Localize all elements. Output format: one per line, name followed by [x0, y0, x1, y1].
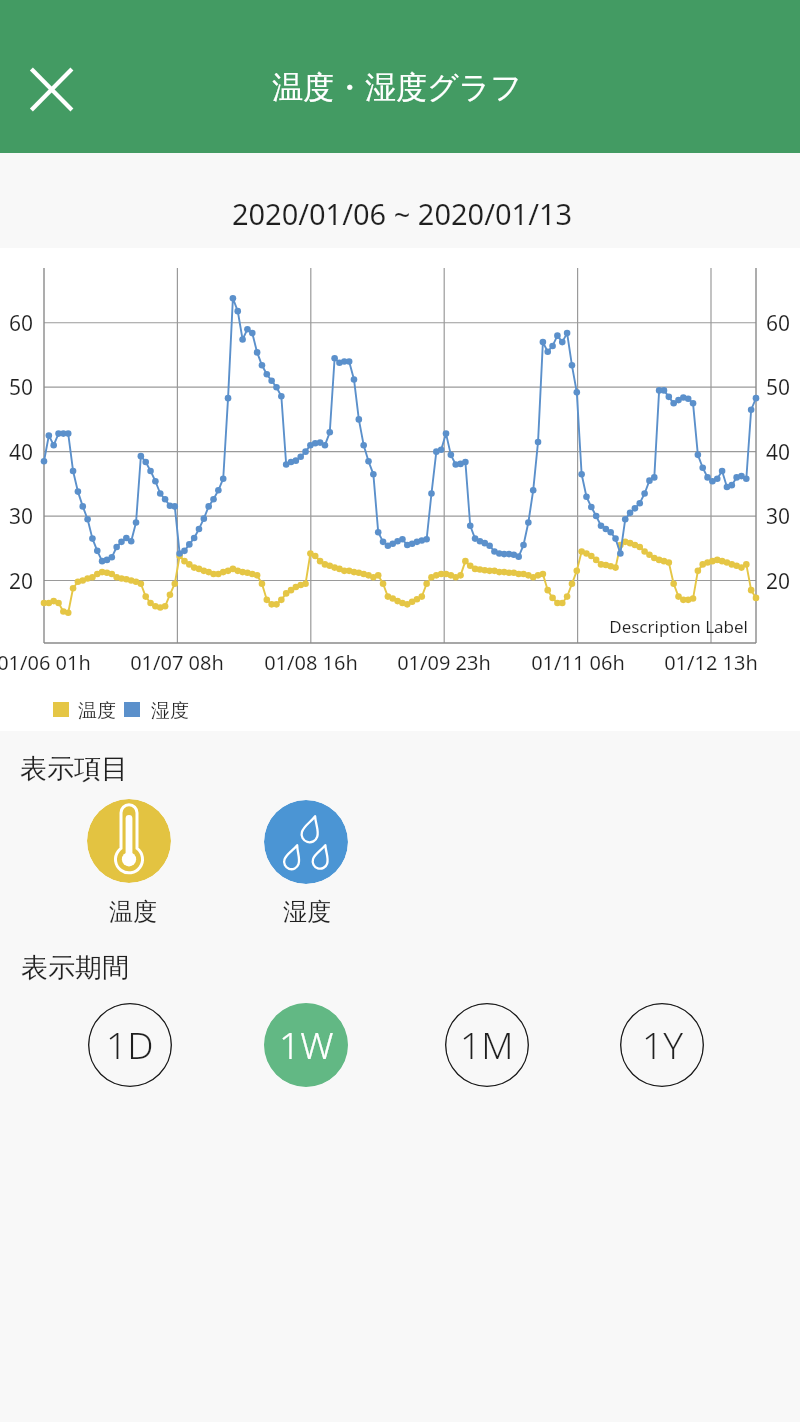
staticText: 表示期間 [21, 951, 721, 985]
staticText: 1W [279, 1019, 334, 1069]
staticText: 表示項目 [20, 752, 720, 786]
staticText: 30 [0, 502, 33, 531]
staticText: 01/09 23h [94, 649, 794, 676]
staticText: 40 [0, 438, 33, 467]
button[interactable]: 1Y [620, 1003, 704, 1087]
staticText: 01/11 06h [228, 649, 800, 676]
staticText: 2020/01/06 ~ 2020/01/13 [52, 194, 752, 233]
staticText: 20 [0, 567, 33, 596]
staticText: 湿度 [151, 699, 800, 723]
staticText: 30 [766, 502, 800, 531]
button[interactable]: Close [16, 54, 88, 126]
staticText: 1M [460, 1019, 514, 1069]
button[interactable]: 1M [445, 1003, 529, 1087]
staticText: 60 [0, 309, 33, 338]
staticText: 温度 [78, 699, 778, 723]
staticText: 01/06 01h [0, 649, 394, 676]
staticText: 温度 [0, 897, 483, 927]
staticText: 01/07 08h [0, 649, 527, 676]
button[interactable]: 1W [264, 1003, 348, 1087]
staticText: 01/08 16h [0, 649, 661, 676]
staticText: 1Y [642, 1019, 683, 1069]
staticText: 20 [766, 567, 800, 596]
staticText: 40 [766, 438, 800, 467]
button[interactable] [264, 800, 348, 884]
staticText: 50 [0, 373, 33, 402]
button[interactable]: 1D [88, 1003, 172, 1087]
staticText: 50 [766, 373, 800, 402]
button[interactable] [87, 799, 171, 883]
staticText: 温度・湿度グラフ [272, 68, 523, 107]
staticText: 湿度 [0, 897, 657, 927]
staticText: Description Label [48, 615, 748, 638]
staticText: 01/12 13h [361, 649, 800, 676]
staticText: 1D [106, 1019, 154, 1069]
staticText: 60 [766, 309, 800, 338]
